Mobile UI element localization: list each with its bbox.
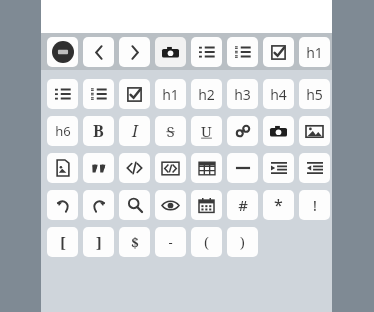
- button[interactable]: Image: [299, 116, 330, 146]
- staticText: (: [204, 233, 209, 252]
- button[interactable]: Numbered list: [227, 37, 258, 67]
- staticText: !: [313, 196, 317, 215]
- button[interactable]: Camera: [263, 116, 294, 146]
- staticText: h3: [234, 85, 251, 104]
- button[interactable]: S: [155, 116, 186, 146]
- button[interactable]: Redo: [83, 190, 114, 220]
- button[interactable]: (: [191, 227, 222, 257]
- button[interactable]: Attach file: [47, 153, 78, 183]
- button[interactable]: h4: [263, 79, 294, 109]
- button[interactable]: Next: [119, 37, 150, 67]
- button[interactable]: Search: [119, 190, 150, 220]
- staticText: h5: [306, 85, 323, 104]
- staticText: h6: [55, 122, 71, 140]
- button[interactable]: $: [119, 227, 150, 257]
- staticText: #: [238, 195, 248, 215]
- button[interactable]: Task list: [119, 79, 150, 109]
- staticText: h1: [306, 43, 323, 62]
- button[interactable]: *: [263, 190, 294, 220]
- button[interactable]: ]: [83, 227, 114, 257]
- button[interactable]: [: [47, 227, 78, 257]
- button[interactable]: Indent: [263, 153, 294, 183]
- button[interactable]: Camera: [155, 37, 186, 67]
- button[interactable]: Inline code: [119, 153, 150, 183]
- staticText: *: [274, 194, 283, 216]
- button[interactable]: Code block: [155, 153, 186, 183]
- button[interactable]: ): [227, 227, 258, 257]
- staticText: S: [166, 121, 175, 141]
- button[interactable]: h3: [227, 79, 258, 109]
- button[interactable]: Outdent: [299, 153, 330, 183]
- staticText: ): [240, 233, 245, 252]
- button[interactable]: Bulleted list: [47, 79, 78, 109]
- button[interactable]: Link: [227, 116, 258, 146]
- button[interactable]: Horizontal rule: [227, 153, 258, 183]
- button[interactable]: U: [191, 116, 222, 146]
- staticText: $: [131, 233, 139, 252]
- button[interactable]: Numbered list: [83, 79, 114, 109]
- button[interactable]: Quote: [83, 153, 114, 183]
- staticText: ]: [96, 233, 102, 252]
- staticText: B: [93, 120, 104, 142]
- staticText: h4: [270, 85, 287, 104]
- button[interactable]: -: [155, 227, 186, 257]
- staticText: U: [201, 121, 212, 141]
- button[interactable]: !: [299, 190, 330, 220]
- button[interactable]: Task list: [263, 37, 294, 67]
- staticText: [: [60, 233, 66, 252]
- staticText: -: [168, 233, 173, 251]
- button[interactable]: I: [119, 116, 150, 146]
- button[interactable]: B: [83, 116, 114, 146]
- button[interactable]: #: [227, 190, 258, 220]
- button[interactable]: Table: [191, 153, 222, 183]
- button[interactable]: Previous: [83, 37, 114, 67]
- button[interactable]: Hide keyboard: [47, 37, 78, 67]
- button[interactable]: h2: [191, 79, 222, 109]
- staticText: h2: [198, 85, 215, 104]
- button[interactable]: h5: [299, 79, 330, 109]
- button[interactable]: Date: [191, 190, 222, 220]
- staticText: I: [132, 120, 138, 142]
- button[interactable]: Undo: [47, 190, 78, 220]
- button[interactable]: Preview: [155, 190, 186, 220]
- button[interactable]: Bulleted list: [191, 37, 222, 67]
- staticText: h1: [162, 85, 179, 104]
- button[interactable]: h1: [299, 37, 330, 67]
- button[interactable]: h6: [47, 116, 78, 146]
- button[interactable]: h1: [155, 79, 186, 109]
